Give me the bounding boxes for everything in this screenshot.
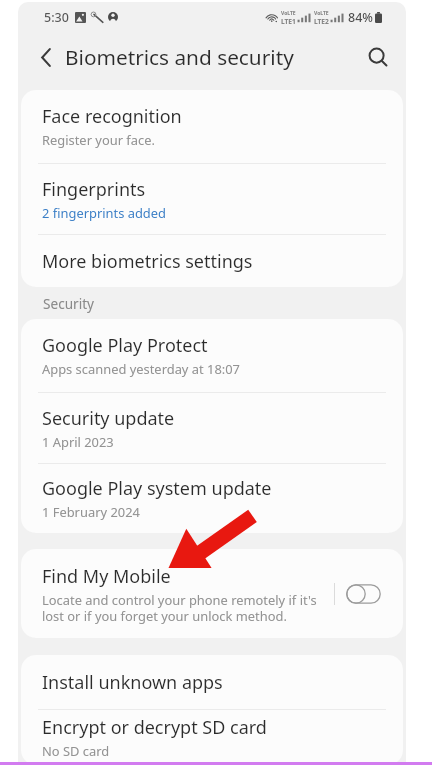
staticText: 5:30 [44, 9, 69, 26]
staticText: Security [43, 294, 95, 313]
button[interactable]: Navigate up [26, 34, 66, 74]
staticText: More biometrics settings [42, 249, 253, 274]
staticText: LTE1 [281, 17, 296, 24]
staticText: Security update [42, 406, 175, 431]
button[interactable]: Install unknown apps [21, 655, 403, 709]
button[interactable]: Face recognition [21, 90, 403, 163]
button[interactable]: More biometrics settings [21, 235, 403, 287]
staticText: Encrypt or decrypt SD card [42, 715, 267, 740]
button[interactable]: Search [358, 34, 398, 74]
staticText: 84% [348, 9, 373, 26]
button[interactable]: Fingerprints [21, 164, 403, 234]
button[interactable]: Google Play Protect [21, 319, 403, 392]
staticText: Apps scanned yesterday at 18:07 [42, 360, 240, 378]
button[interactable]: Encrypt or decrypt SD card [21, 710, 403, 765]
staticText: Biometrics and security [65, 43, 294, 71]
staticText: Install unknown apps [42, 670, 223, 695]
button[interactable]: Google Play system update [21, 464, 403, 533]
button[interactable]: Security update [21, 393, 403, 463]
button[interactable]: Find My Mobile switch [346, 584, 381, 604]
staticText: Fingerprints [42, 177, 146, 202]
staticText: LTE2 [314, 17, 329, 24]
staticText: 2 fingerprints added [42, 204, 166, 222]
staticText: Google Play system update [42, 476, 272, 501]
staticText: 1 April 2023 [42, 433, 114, 451]
staticText: VoLTE [281, 10, 296, 17]
staticText: Register your face. [42, 131, 155, 149]
staticText: Face recognition [42, 104, 182, 129]
staticText: 1 February 2024 [42, 503, 140, 521]
staticText: Find My Mobile [42, 564, 171, 589]
button[interactable]: Find My Mobile [21, 549, 403, 638]
staticText: Locate and control your phone remotely i… [42, 591, 317, 624]
staticText: No SD card [42, 742, 110, 760]
staticText: Google Play Protect [42, 333, 208, 358]
staticText: VoLTE [314, 10, 329, 17]
